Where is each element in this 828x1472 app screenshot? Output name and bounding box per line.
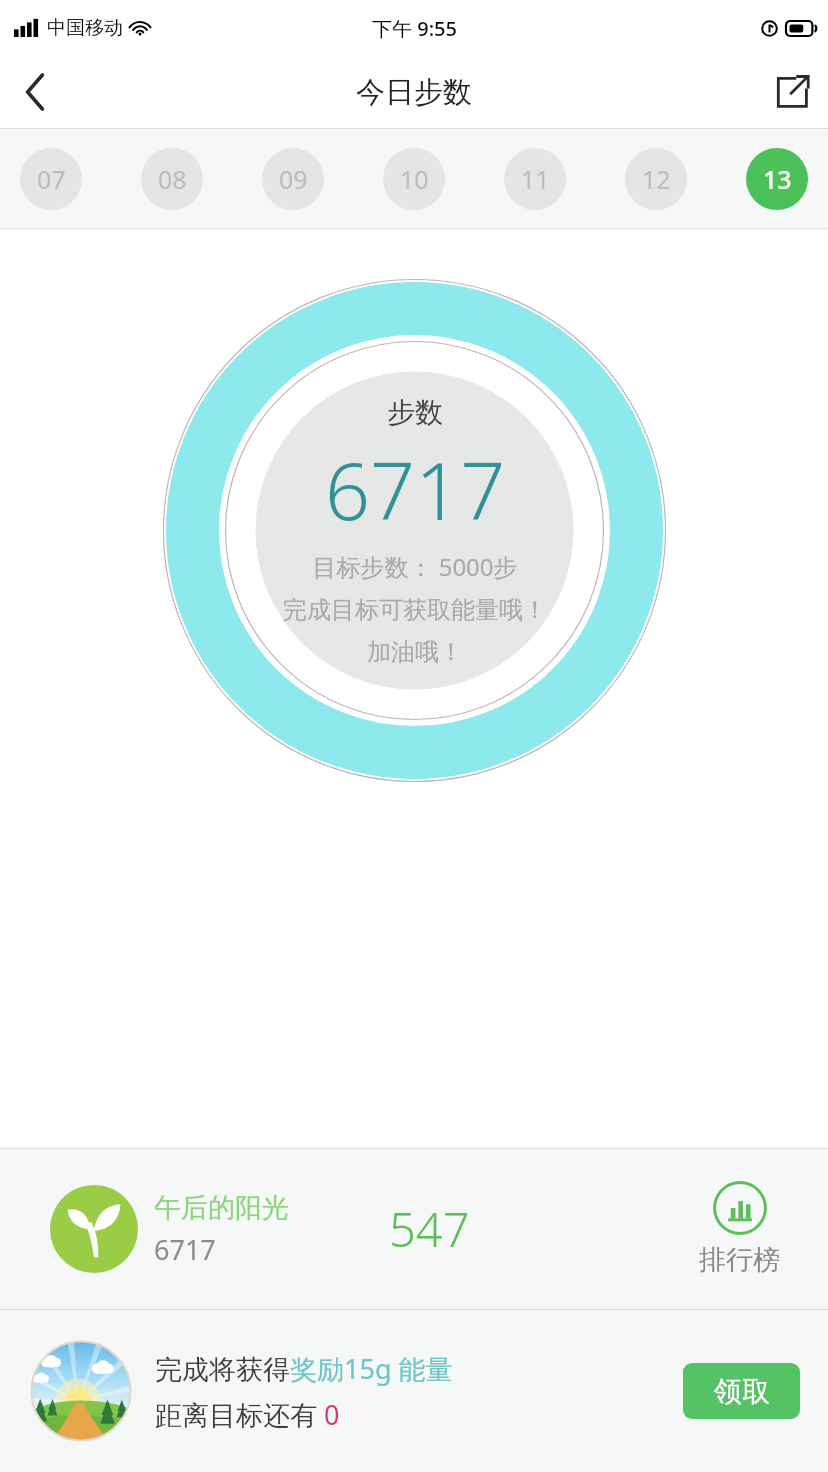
button[interactable]: 08 xyxy=(141,148,203,210)
button[interactable]: 10 xyxy=(383,148,445,210)
staticText: 6717 xyxy=(154,1231,216,1268)
staticText: 午后的阳光 xyxy=(154,1191,289,1225)
staticText: 08 xyxy=(158,162,187,196)
button[interactable]: Back xyxy=(0,56,72,128)
button[interactable]: 领取 xyxy=(683,1363,800,1419)
staticText: 距离目标还有 0 xyxy=(155,1396,340,1433)
staticText: 13 xyxy=(763,162,792,196)
button[interactable]: Share xyxy=(756,56,828,128)
staticText: 6717 xyxy=(325,436,506,544)
button[interactable]: 07 xyxy=(20,148,82,210)
staticText: 完成目标可获取能量哦！ xyxy=(283,595,547,625)
staticText: 目标步数： 5000步 xyxy=(312,550,518,583)
button[interactable]: 12 xyxy=(625,148,687,210)
staticText: 今日步数 xyxy=(356,74,472,111)
staticText: 加油哦！ xyxy=(367,637,463,667)
staticText: 步数 xyxy=(387,395,443,430)
staticText: 11 xyxy=(521,162,550,196)
button[interactable]: 排行榜 xyxy=(699,1181,780,1277)
staticText: 中国移动 xyxy=(47,16,123,40)
button[interactable]: 午后的阳光 xyxy=(50,1185,289,1273)
button[interactable]: 13 xyxy=(746,148,808,210)
staticText: 下午 9:55 xyxy=(372,15,457,42)
button[interactable]: 09 xyxy=(262,148,324,210)
staticText: 领取 xyxy=(714,1374,770,1409)
staticText: 12 xyxy=(642,162,671,196)
staticText: 07 xyxy=(37,162,66,196)
staticText: 排行榜 xyxy=(699,1243,780,1277)
staticText: 09 xyxy=(279,162,308,196)
button[interactable]: 11 xyxy=(504,148,566,210)
staticText: 547 xyxy=(389,1197,470,1261)
staticText: 10 xyxy=(400,162,429,196)
staticText: 完成将获得奖励15g 能量 xyxy=(155,1350,453,1387)
